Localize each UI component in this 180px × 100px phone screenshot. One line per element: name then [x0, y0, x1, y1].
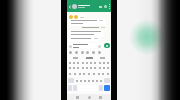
button[interactable]	[72, 56, 79, 60]
button[interactable]: Keyboard tool	[69, 51, 72, 54]
button[interactable]: Keyboard tool	[86, 51, 89, 54]
button[interactable]	[68, 43, 103, 48]
button[interactable]: Keyboard tool	[98, 51, 101, 54]
button[interactable]	[85, 56, 94, 60]
button[interactable]: Enter	[104, 85, 110, 91]
button[interactable]: Home	[88, 96, 91, 99]
button[interactable]: Keyboard tool	[75, 51, 78, 54]
button[interactable]: Keyboard tool	[81, 51, 84, 54]
button[interactable]	[99, 56, 106, 60]
button[interactable]: Back	[67, 0, 111, 12]
button[interactable]: Keyboard tool	[92, 51, 95, 54]
other: Back	[68, 5, 72, 9]
button[interactable]: Send message	[104, 43, 110, 48]
